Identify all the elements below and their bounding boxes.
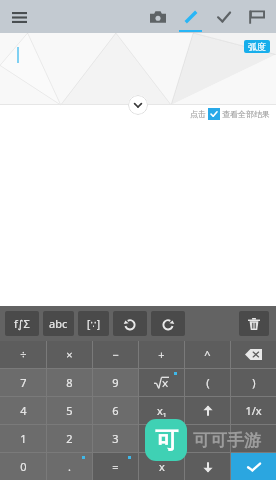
button[interactable]: ÷ <box>0 341 46 368</box>
staticText: ^ <box>204 347 211 362</box>
staticText: 1/x <box>245 403 262 418</box>
staticText: ( <box>206 375 210 390</box>
staticText: 8 <box>66 375 73 390</box>
staticText: 7 <box>20 375 27 390</box>
staticText: 5 <box>66 403 73 418</box>
staticText: 可 <box>155 426 178 455</box>
staticText: x <box>157 403 163 418</box>
button[interactable]: 0 <box>0 453 46 480</box>
button[interactable]: = <box>93 453 138 480</box>
button[interactable]: Square root <box>139 369 184 396</box>
button[interactable]: Redo <box>151 311 185 336</box>
button[interactable]: ( <box>185 369 230 396</box>
button[interactable]: Flag <box>240 0 273 33</box>
staticText: . <box>68 459 71 474</box>
button[interactable]: Matrix <box>78 311 109 336</box>
button[interactable]: 弧度 <box>244 40 270 53</box>
staticText: 9 <box>112 375 119 390</box>
button[interactable]: ) <box>231 369 276 396</box>
button[interactable]: Undo <box>113 311 147 336</box>
button[interactable]: 2 <box>47 425 92 452</box>
staticText: × <box>66 347 73 362</box>
button[interactable]: 9 <box>93 369 138 396</box>
staticText: 3 <box>112 431 119 446</box>
staticText: 弧度 <box>248 41 266 52</box>
button[interactable]: Menu <box>7 5 31 29</box>
button[interactable]: Functions <box>5 311 39 336</box>
staticText: 点击 <box>190 109 206 119</box>
staticText: 1 <box>20 431 27 446</box>
button[interactable] <box>185 425 230 452</box>
button[interactable]: 3 <box>93 425 138 452</box>
staticText: abc <box>49 316 68 331</box>
staticText: = <box>112 459 119 474</box>
button[interactable]: Edit <box>174 0 207 33</box>
button[interactable]: ^ <box>185 341 230 368</box>
button[interactable] <box>231 425 276 452</box>
button[interactable]: Up <box>185 397 230 424</box>
button[interactable]: 4 <box>0 397 46 424</box>
staticText: f∫Σ <box>14 316 30 331</box>
button[interactable]: Expand <box>128 95 148 115</box>
button[interactable]: 5 <box>47 397 92 424</box>
button[interactable]: Clear all <box>239 311 269 336</box>
button[interactable]: 1/x <box>231 397 276 424</box>
staticText: ₁ <box>163 406 167 418</box>
button[interactable]: 7 <box>0 369 46 396</box>
button[interactable]: Enter <box>231 453 276 480</box>
staticText: 查看全部结果 <box>222 109 270 119</box>
staticText: 4 <box>20 403 27 418</box>
button[interactable]: x <box>139 453 184 480</box>
button[interactable]: − <box>93 341 138 368</box>
button[interactable]: Letters <box>43 311 74 336</box>
button[interactable]: Backspace <box>231 341 276 368</box>
staticText: + <box>158 347 165 362</box>
button[interactable] <box>139 425 184 452</box>
button[interactable]: Confirm <box>207 0 240 33</box>
button[interactable]: Subscript <box>139 397 184 424</box>
staticText: 2 <box>66 431 73 446</box>
button[interactable]: × <box>47 341 92 368</box>
button[interactable]: + <box>139 341 184 368</box>
staticText: [∵] <box>87 317 100 331</box>
staticText: 6 <box>112 403 119 418</box>
button[interactable]: 6 <box>93 397 138 424</box>
staticText: 可可手游 <box>193 430 261 451</box>
button[interactable]: Down <box>185 453 230 480</box>
staticText: − <box>112 347 119 362</box>
staticText: ) <box>252 375 256 390</box>
staticText: ÷ <box>20 347 27 362</box>
button[interactable]: 8 <box>47 369 92 396</box>
button[interactable]: 1 <box>0 425 46 452</box>
button[interactable]: . <box>47 453 92 480</box>
button[interactable]: Show all results <box>208 108 220 120</box>
button[interactable]: Camera <box>141 0 174 33</box>
staticText: 0 <box>20 459 27 474</box>
staticText: x <box>159 459 165 474</box>
